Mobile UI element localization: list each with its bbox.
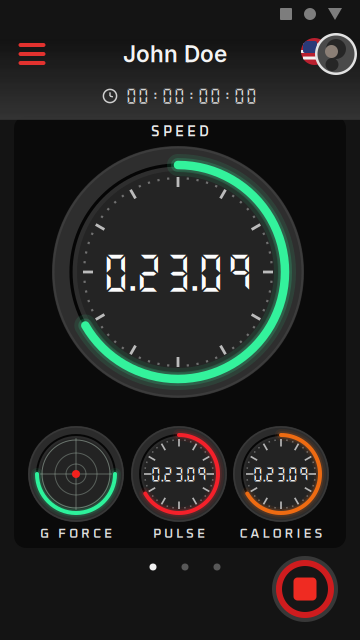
button[interactable]: Page 1 [137, 556, 169, 578]
staticText: John Doe [123, 40, 227, 68]
staticText: S P E E D [151, 125, 209, 139]
button[interactable]: Profile [294, 33, 350, 75]
staticText: C A L O R I E S [239, 527, 322, 541]
button[interactable]: Page 3 [201, 556, 233, 578]
staticText: 0.23.09 [252, 465, 309, 483]
staticText: 0.23.09 [150, 465, 207, 483]
button[interactable]: Stop recording [272, 556, 338, 622]
button[interactable]: Page 2 [169, 556, 201, 578]
staticText: G F O R C E [40, 527, 112, 541]
button[interactable]: Menu [8, 28, 56, 80]
staticText: 0.23.09 [101, 249, 254, 295]
staticText: P U L S E [153, 527, 205, 541]
staticText: 00:00:00:00 [125, 86, 257, 105]
